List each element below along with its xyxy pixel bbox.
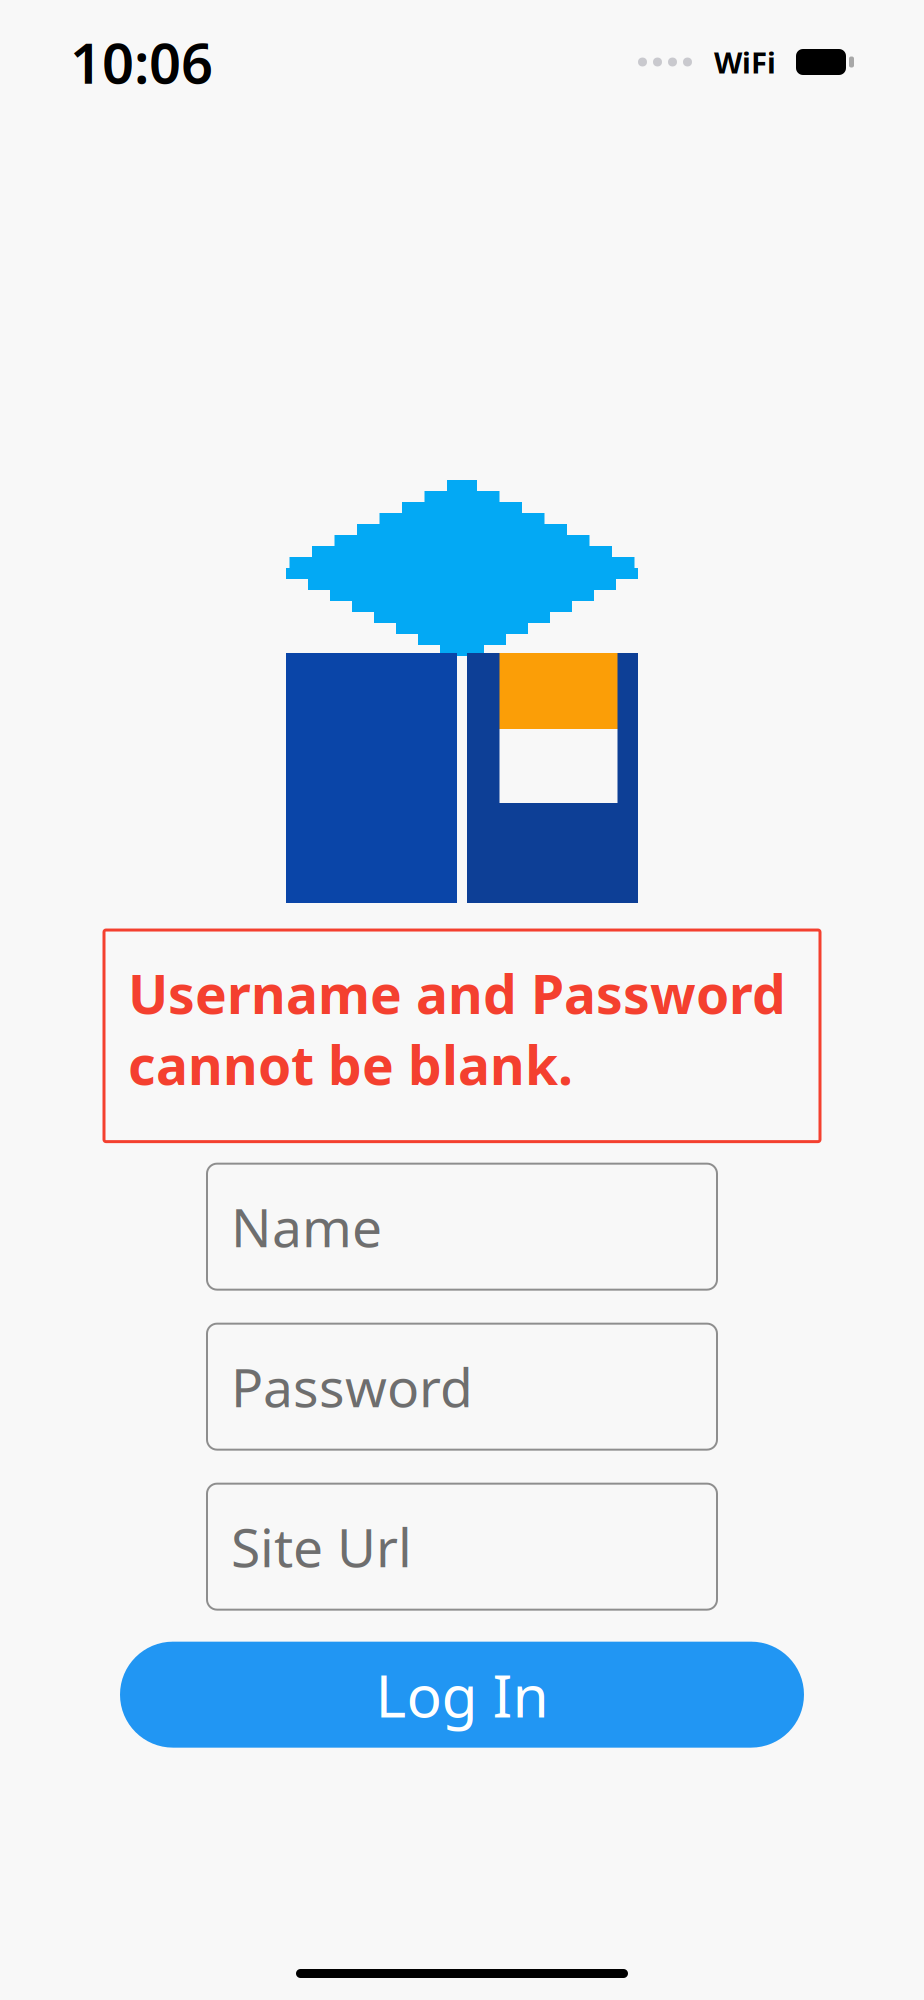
staticText: WiFi: [714, 42, 776, 81]
staticText: Site Url: [231, 1511, 412, 1582]
button[interactable]: Password: [207, 1324, 717, 1450]
button[interactable]: Site Url: [207, 1484, 717, 1610]
staticText: Password: [231, 1351, 473, 1422]
button[interactable]: Log In: [120, 1642, 804, 1748]
staticText: 10:06: [70, 25, 213, 99]
staticText: Username and Password cannot be blank.: [128, 958, 786, 1100]
staticText: Name: [231, 1191, 382, 1262]
staticText: Log In: [375, 1656, 548, 1734]
button[interactable]: Name: [207, 1164, 717, 1290]
